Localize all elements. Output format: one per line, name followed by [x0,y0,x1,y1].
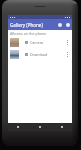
staticText: Camera [30,40,44,45]
staticText: Gallery (Phone) [10,22,43,28]
button[interactable]: Download [8,48,72,60]
staticText: Download [30,52,48,57]
button[interactable]: Search [58,23,62,27]
button[interactable]: Camera [8,36,72,48]
button[interactable]: More options [66,23,70,27]
staticText: Albums on the phone [10,31,47,36]
